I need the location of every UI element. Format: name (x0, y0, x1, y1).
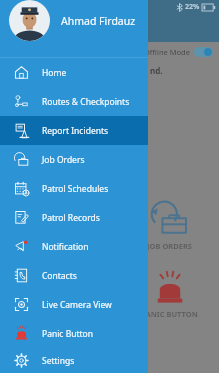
staticText: JOB ORDERS (147, 241, 192, 251)
staticText: 22% (185, 2, 200, 12)
staticText: Settings (42, 355, 75, 367)
button[interactable]: PANIC BUTTON (0, 264, 219, 326)
button[interactable]: Report Incidents (0, 116, 148, 145)
button[interactable]: Home (0, 58, 148, 87)
staticText: Patrol Records (42, 212, 100, 224)
button[interactable]: Patrol Records (0, 203, 148, 232)
button[interactable]: Offline Mode (144, 47, 213, 57)
staticText: Job Orders (42, 154, 85, 166)
staticText: Routes & Checkpoints (42, 96, 130, 108)
staticText: Notification (42, 241, 89, 253)
button[interactable]: Live Camera View (0, 290, 148, 319)
staticText: Live Camera View (42, 299, 112, 311)
button[interactable]: JOB ORDERS (0, 194, 219, 256)
button[interactable]: Contacts (0, 261, 148, 290)
staticText: Panic Button (42, 328, 93, 340)
staticText: Home (42, 67, 67, 79)
staticText: Report Incidents (42, 125, 109, 137)
staticText: Offline Mode (144, 47, 190, 57)
staticText: Contacts (42, 270, 77, 282)
button[interactable]: Settings (0, 348, 148, 373)
staticText: Patrol Schedules (42, 183, 109, 195)
button[interactable]: Panic Button (0, 319, 148, 348)
button[interactable]: Patrol Schedules (0, 174, 148, 203)
button[interactable]: Routes & Checkpoints (0, 87, 148, 116)
button[interactable]: Job Orders (0, 145, 148, 174)
button[interactable]: Ahmad Firdauz (9, 0, 148, 41)
staticText: Ahmad Firdauz (61, 14, 136, 28)
staticText: nd. (150, 65, 163, 76)
button[interactable]: Notification (0, 232, 148, 261)
staticText: PANIC BUTTON (141, 309, 198, 319)
